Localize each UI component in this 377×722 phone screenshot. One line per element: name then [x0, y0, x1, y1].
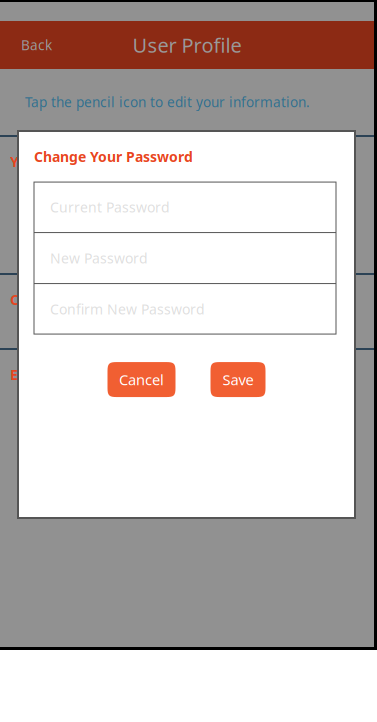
button[interactable]: Cancel	[107, 362, 175, 397]
staticText: Confirm New Password	[50, 299, 205, 319]
staticText: Tap the pencil icon to edit your informa…	[25, 93, 310, 111]
staticText: Back	[21, 36, 52, 54]
staticText: New Password	[50, 248, 148, 268]
staticText: Your Name	[10, 152, 87, 171]
button[interactable]: Save	[210, 362, 265, 397]
staticText: Save	[222, 370, 253, 390]
staticText: User Profile	[132, 31, 241, 59]
staticText: Email	[10, 365, 48, 384]
staticText: Change Password	[10, 290, 133, 309]
staticText: Current Password	[50, 197, 170, 217]
staticText: Change Your Password	[34, 147, 193, 166]
button[interactable]: Back	[0, 21, 80, 69]
staticText: Cancel	[119, 370, 164, 390]
